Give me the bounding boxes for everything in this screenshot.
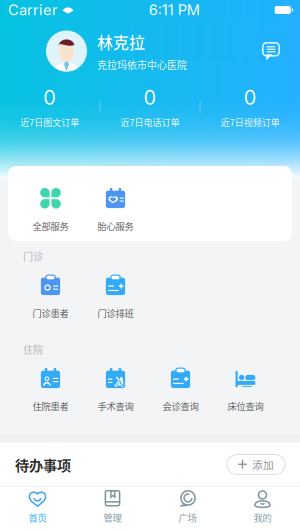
staticText: 手术查询 <box>97 399 133 413</box>
button[interactable]: 消息 <box>256 36 286 66</box>
staticText: 住院患者 <box>32 399 68 413</box>
staticText: 待办事项 <box>15 454 71 475</box>
staticText: 门诊 <box>23 249 43 263</box>
staticText: 0 <box>143 85 156 109</box>
staticText: 近7日电话订单 <box>120 115 179 129</box>
staticText: 克拉玛依市中心医院 <box>97 57 187 72</box>
button[interactable]: 胎心服务 <box>83 185 148 232</box>
button[interactable]: 添加 <box>227 454 285 474</box>
staticText: 0 <box>43 85 56 109</box>
staticText: 6:11 PM <box>149 1 200 19</box>
button[interactable]: 会诊查询 <box>148 365 213 412</box>
staticText: 广场 <box>178 511 196 524</box>
button[interactable]: 门诊排班 <box>83 272 148 319</box>
staticText: 门诊排班 <box>97 306 133 320</box>
button[interactable]: 管理 <box>75 487 150 530</box>
staticText: 林克拉 <box>97 30 145 53</box>
button[interactable]: 全部服务 <box>18 185 83 232</box>
staticText: 添加 <box>252 457 274 472</box>
button[interactable]: 我的 <box>225 487 300 530</box>
button[interactable]: 床位查询 <box>213 365 278 412</box>
button[interactable]: 手术查询 <box>83 365 148 412</box>
button[interactable]: 住院患者 <box>18 365 83 412</box>
staticText: 床位查询 <box>227 399 263 413</box>
button[interactable]: 广场 <box>150 487 225 530</box>
staticText: 胎心服务 <box>97 219 133 233</box>
button[interactable]: 首页 <box>0 487 75 530</box>
staticText: 全部服务 <box>32 219 68 233</box>
staticText: 近7日视频订单 <box>221 115 280 129</box>
staticText: 门诊患者 <box>32 306 68 320</box>
staticText: Carrier <box>8 1 58 19</box>
staticText: 0 <box>244 85 257 109</box>
staticText: 住院 <box>23 342 43 356</box>
button[interactable]: 门诊患者 <box>18 272 83 319</box>
staticText: 会诊查询 <box>162 399 198 413</box>
staticText: 首页 <box>28 511 46 524</box>
staticText: 管理 <box>103 511 121 524</box>
staticText: 我的 <box>253 511 271 524</box>
staticText: 近7日图文订单 <box>20 115 79 129</box>
